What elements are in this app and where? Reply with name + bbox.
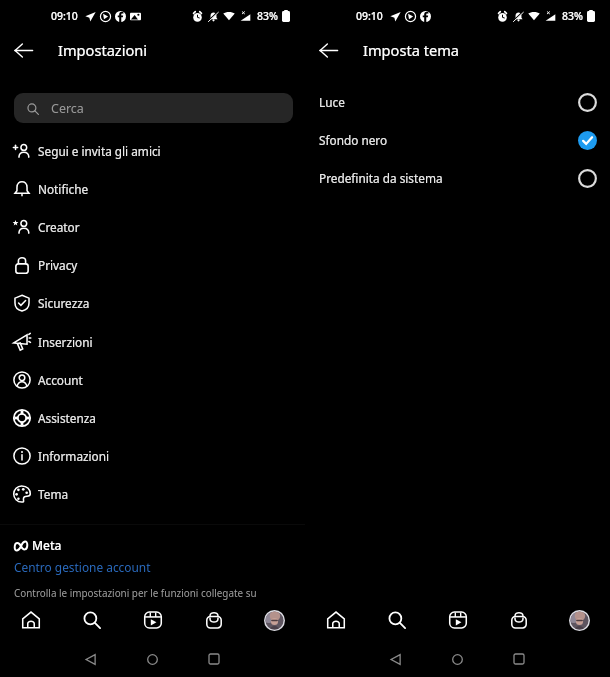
button[interactable]: Profile: [549, 602, 610, 638]
button[interactable]: Predefinita da sistema: [305, 159, 610, 197]
button[interactable]: Segui e invita gli amici: [0, 132, 305, 170]
button[interactable]: Home: [305, 602, 366, 638]
button[interactable]: Shop: [183, 602, 244, 638]
button[interactable]: Home: [0, 602, 61, 638]
staticText: Meta: [32, 537, 62, 553]
button[interactable]: Back: [77, 646, 103, 672]
button[interactable]: Notifiche: [0, 170, 305, 208]
button[interactable]: Tema: [0, 475, 305, 513]
staticText: Cerca: [51, 100, 84, 117]
button[interactable]: Home: [444, 646, 470, 672]
button[interactable]: Sfondo nero: [305, 121, 610, 159]
button[interactable]: Cerca: [14, 93, 293, 123]
staticText: Tema: [38, 486, 69, 502]
staticText: 09:10: [356, 9, 383, 23]
staticText: Notifiche: [38, 181, 89, 197]
staticText: 83%: [562, 9, 583, 23]
staticText: Privacy: [38, 257, 78, 273]
button[interactable]: Shop: [488, 602, 549, 638]
button[interactable]: Reels: [427, 602, 488, 638]
button[interactable]: Recents: [506, 646, 532, 672]
button[interactable]: Back: [6, 33, 40, 67]
button[interactable]: Back: [382, 646, 408, 672]
staticText: Assistenza: [38, 410, 96, 426]
button[interactable]: Creator: [0, 208, 305, 246]
button[interactable]: Recents: [201, 646, 227, 672]
staticText: Informazioni: [38, 448, 110, 464]
button[interactable]: Sicurezza: [0, 284, 305, 322]
staticText: Segui e invita gli amici: [38, 143, 161, 159]
staticText: Controlla le impostazioni per le funzion…: [14, 586, 257, 599]
button[interactable]: Home: [139, 646, 165, 672]
staticText: Account: [38, 372, 83, 388]
button[interactable]: Privacy: [0, 246, 305, 284]
button[interactable]: Account: [0, 361, 305, 399]
staticText: Sicurezza: [38, 295, 90, 311]
button[interactable]: Assistenza: [0, 399, 305, 437]
staticText: Impostazioni: [58, 40, 148, 60]
staticText: Sfondo nero: [319, 132, 388, 148]
button[interactable]: Reels: [122, 602, 183, 638]
button[interactable]: Search: [366, 602, 427, 638]
button[interactable]: Search: [61, 602, 122, 638]
staticText: Luce: [319, 94, 345, 110]
staticText: Creator: [38, 219, 80, 235]
button[interactable]: Profile: [244, 602, 305, 638]
button[interactable]: Inserzioni: [0, 323, 305, 361]
button[interactable]: Informazioni: [0, 437, 305, 475]
staticText: Imposta tema: [363, 40, 459, 60]
staticText: 83%: [257, 9, 278, 23]
staticText: Predefinita da sistema: [319, 170, 443, 186]
button[interactable]: Back: [311, 33, 345, 67]
staticText: 09:10: [51, 9, 78, 23]
button[interactable]: Luce: [305, 83, 610, 121]
staticText: Inserzioni: [38, 334, 93, 350]
button[interactable]: Centro gestione account: [14, 559, 151, 575]
